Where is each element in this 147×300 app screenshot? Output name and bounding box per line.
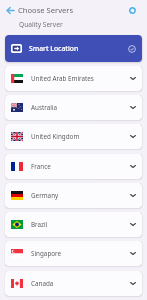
button[interactable]: Smart Location [5, 35, 142, 62]
staticText: France [31, 162, 51, 171]
button[interactable]: Refresh [124, 2, 140, 18]
button[interactable]: Singapore [5, 241, 142, 266]
button[interactable]: Canada [5, 271, 142, 296]
button[interactable]: Brazil [5, 212, 142, 237]
staticText: Choose Servers [18, 5, 74, 15]
staticText: Germany [31, 191, 59, 200]
staticText: Singapore [31, 249, 62, 258]
button[interactable]: France [5, 154, 142, 179]
staticText: Smart Location [29, 44, 79, 53]
staticText: Quality Server [19, 20, 63, 29]
staticText: Australia [31, 103, 57, 112]
staticText: United Kingdom [31, 132, 80, 141]
staticText: Canada [31, 279, 54, 288]
button[interactable]: Back [2, 2, 18, 18]
button[interactable]: Germany [5, 183, 142, 208]
staticText: United Arab Emirates [31, 74, 94, 83]
button[interactable]: Australia [5, 95, 142, 120]
staticText: Brazil [31, 220, 48, 229]
button[interactable]: United Arab Emirates [5, 66, 142, 91]
button[interactable]: United Kingdom [5, 124, 142, 149]
